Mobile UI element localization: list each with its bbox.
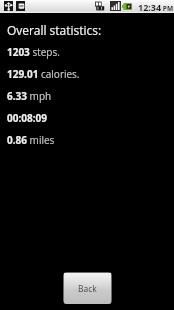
staticText: Overall statistics:	[7, 22, 102, 38]
staticText: 12:34 PM	[138, 1, 174, 13]
other: Signal strength	[110, 1, 121, 11]
staticText: 6.33 mph	[7, 89, 52, 103]
staticText: 0.86 miles	[7, 133, 55, 147]
staticText: Back	[78, 283, 97, 295]
staticText: 00:08:09	[7, 111, 47, 125]
staticText: 129.01 calories.	[7, 67, 80, 81]
other: Storage notification	[16, 1, 25, 11]
button[interactable]: Back	[63, 272, 112, 304]
staticText: 1203 steps.	[7, 45, 60, 59]
other: Mobile data	[95, 1, 105, 11]
other: Battery charging	[122, 3, 132, 10]
other: USB connected	[4, 1, 13, 11]
